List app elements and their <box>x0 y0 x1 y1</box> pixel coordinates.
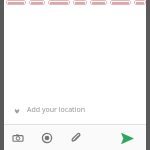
button[interactable] <box>48 0 70 5</box>
button[interactable] <box>90 0 107 5</box>
button[interactable]: Attach file <box>68 130 84 146</box>
button[interactable]: Add your location <box>4 99 146 121</box>
button[interactable] <box>6 0 26 5</box>
button[interactable]: Insert sticker <box>39 130 55 146</box>
button[interactable] <box>73 0 87 5</box>
staticText: Add your location <box>27 105 85 115</box>
button[interactable]: Send <box>115 126 139 150</box>
button[interactable] <box>29 0 45 5</box>
button[interactable] <box>134 0 146 5</box>
button[interactable]: Take photo <box>10 130 26 146</box>
button[interactable] <box>110 0 131 5</box>
